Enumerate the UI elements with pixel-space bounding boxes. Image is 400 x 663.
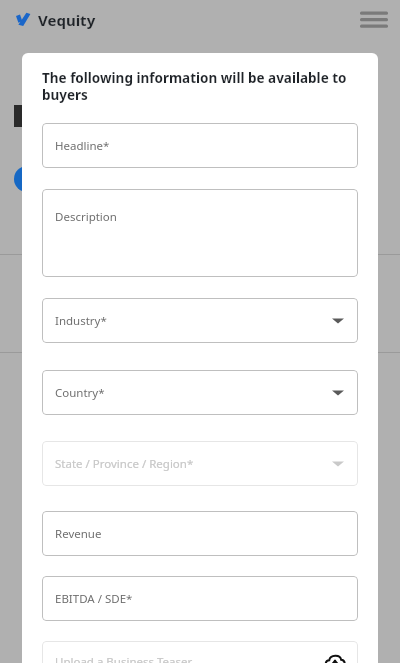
button[interactable]: State / Province / Region* xyxy=(42,441,358,486)
button[interactable]: Industry* xyxy=(42,298,358,343)
staticText: Country* xyxy=(55,385,105,401)
button[interactable]: Revenue xyxy=(42,511,358,556)
button[interactable]: Country* xyxy=(42,370,358,415)
staticText: EBITDA / SDE* xyxy=(55,591,133,607)
button[interactable]: Upload a Business Teaser xyxy=(42,641,358,663)
button[interactable]: Upload a business teaser xyxy=(324,653,346,663)
button[interactable]: Open navigation menu xyxy=(356,2,392,38)
staticText: The following information will be availa… xyxy=(42,69,358,104)
staticText: Headline* xyxy=(55,138,110,154)
button[interactable]: Vequity xyxy=(14,10,96,30)
staticText: Industry* xyxy=(55,313,107,329)
staticText: Description xyxy=(55,209,117,225)
staticText: Upload a Business Teaser xyxy=(55,654,193,663)
staticText: State / Province / Region* xyxy=(55,456,194,472)
button[interactable]: Description xyxy=(42,189,358,277)
staticText: Vequity xyxy=(38,10,96,30)
staticText: Revenue xyxy=(55,526,102,542)
button[interactable]: EBITDA / SDE* xyxy=(42,576,358,621)
button[interactable]: Headline* xyxy=(42,123,358,168)
